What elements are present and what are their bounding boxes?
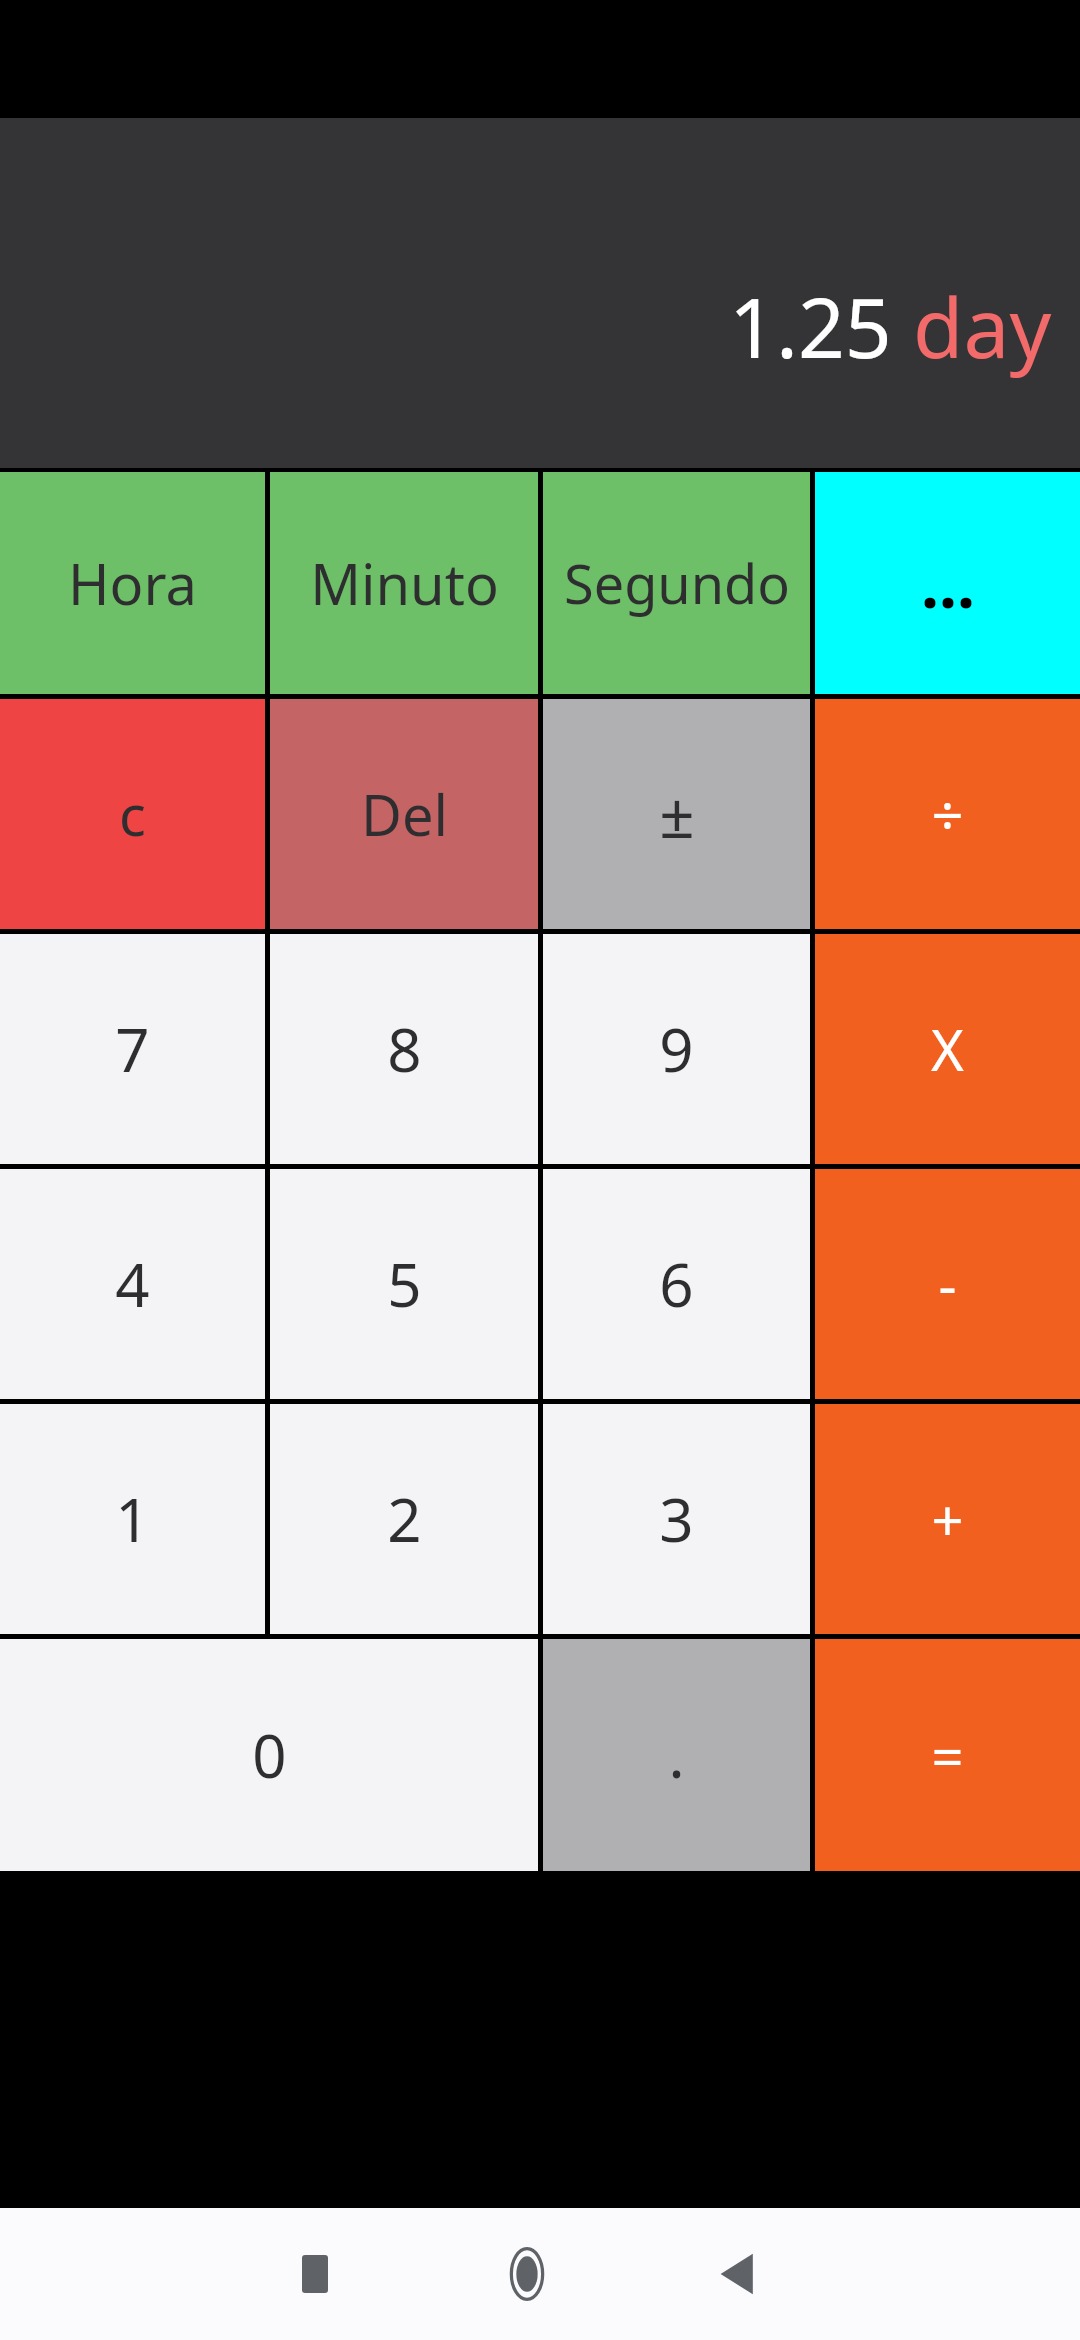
staticText: Hora <box>68 545 197 621</box>
button[interactable]: 5 <box>270 1169 538 1399</box>
button[interactable]: X <box>815 934 1080 1164</box>
staticText: 9 <box>659 1008 694 1090</box>
button[interactable]: Home <box>477 2224 577 2324</box>
button[interactable]: 6 <box>543 1169 810 1399</box>
staticText: 3 <box>659 1478 694 1560</box>
staticText: 0 <box>252 1714 287 1796</box>
button[interactable]: - <box>815 1169 1080 1399</box>
button[interactable]: = <box>815 1639 1080 1871</box>
button[interactable]: 4 <box>0 1169 265 1399</box>
staticText: . <box>668 1714 685 1796</box>
button[interactable]: Hora <box>0 472 265 694</box>
staticText: - <box>938 1246 957 1322</box>
button[interactable]: 7 <box>0 934 265 1164</box>
staticText: 1.25 day <box>729 270 1052 382</box>
button[interactable]: . <box>543 1639 810 1871</box>
button[interactable]: ± <box>543 699 810 929</box>
staticText: Segundo <box>564 546 790 620</box>
staticText: 7 <box>115 1008 150 1090</box>
staticText: 4 <box>115 1243 150 1325</box>
staticText: ... <box>921 540 975 627</box>
staticText: 2 <box>387 1478 422 1560</box>
button[interactable]: Recent apps <box>265 2224 365 2324</box>
button[interactable]: Del <box>270 699 538 929</box>
staticText: 1 <box>115 1478 150 1560</box>
staticText: c <box>119 776 146 852</box>
button[interactable]: 0 <box>0 1639 538 1871</box>
staticText: 6 <box>659 1243 694 1325</box>
staticText: 5 <box>387 1243 422 1325</box>
button[interactable]: ÷ <box>815 699 1080 929</box>
staticText: ± <box>659 772 695 856</box>
staticText: X <box>931 1011 964 1087</box>
button[interactable]: c <box>0 699 265 929</box>
staticText: + <box>931 1481 964 1557</box>
button[interactable]: 3 <box>543 1404 810 1634</box>
button[interactable]: ... <box>815 472 1080 694</box>
button[interactable]: 1 <box>0 1404 265 1634</box>
button[interactable]: 8 <box>270 934 538 1164</box>
button[interactable]: Minuto <box>270 472 538 694</box>
staticText: Minuto <box>310 545 499 621</box>
staticText: 8 <box>387 1008 422 1090</box>
button[interactable]: + <box>815 1404 1080 1634</box>
staticText: ÷ <box>931 776 964 852</box>
button[interactable]: Segundo <box>543 472 810 694</box>
button[interactable]: 9 <box>543 934 810 1164</box>
button[interactable]: Back <box>689 2224 789 2324</box>
staticText: Del <box>361 776 448 852</box>
button[interactable]: 2 <box>270 1404 538 1634</box>
staticText: = <box>931 1717 964 1793</box>
